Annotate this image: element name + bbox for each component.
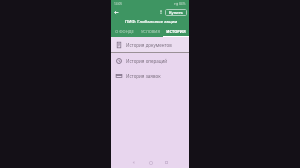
- staticText: ПИФ: Глобальные акции: [125, 18, 178, 24]
- staticText: О ФОНДЕ: [115, 29, 134, 34]
- button[interactable]: Information: [157, 7, 165, 17]
- button[interactable]: История документов: [111, 37, 189, 52]
- staticText: УСЛОВИЯ: [141, 29, 160, 34]
- button[interactable]: Recent apps: [161, 157, 172, 168]
- button[interactable]: История заявок: [111, 68, 189, 83]
- staticText: История операций: [126, 58, 168, 64]
- button[interactable]: ИСТОРИЯ: [163, 25, 189, 37]
- button[interactable]: Back: [128, 157, 139, 168]
- button[interactable]: Купить: [165, 9, 187, 16]
- staticText: ▾ ▮ 84%: [174, 2, 186, 6]
- button[interactable]: Back: [111, 7, 122, 17]
- button[interactable]: УСЛОВИЯ: [137, 25, 163, 37]
- staticText: ИСТОРИЯ: [166, 29, 186, 34]
- staticText: История документов: [126, 42, 172, 48]
- staticText: История заявок: [126, 73, 161, 79]
- staticText: 14:05: [114, 2, 123, 6]
- button[interactable]: О ФОНДЕ: [111, 25, 137, 37]
- staticText: Купить: [169, 10, 183, 15]
- button[interactable]: Home: [145, 157, 156, 168]
- button[interactable]: История операций: [111, 53, 189, 68]
